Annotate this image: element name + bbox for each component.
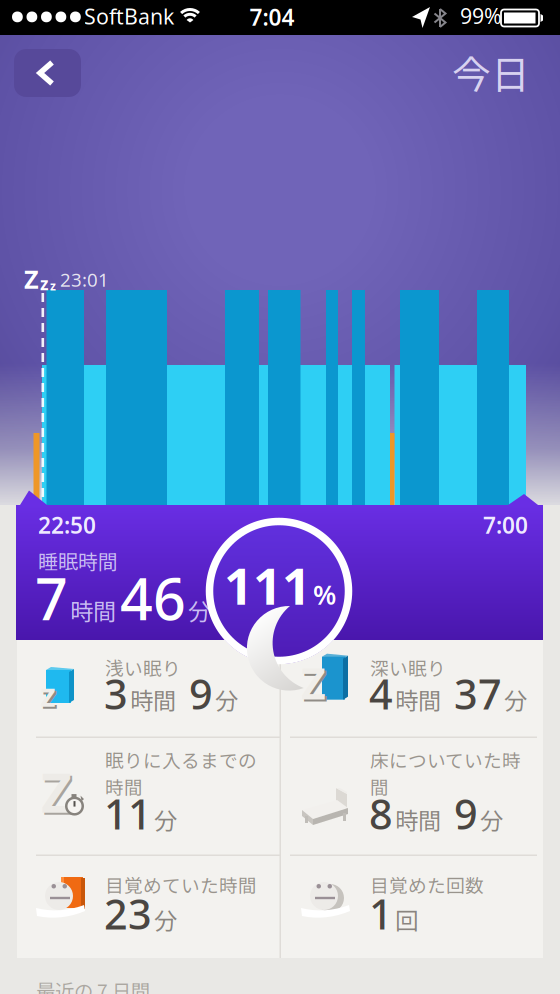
staticText: Z bbox=[41, 757, 72, 827]
staticText: Z bbox=[301, 655, 326, 711]
staticText: 眠りに入るまでの 時間 bbox=[105, 746, 257, 800]
staticText: 深い眠り bbox=[370, 654, 446, 681]
staticText: z bbox=[40, 673, 56, 715]
staticText: 目覚めた回数 bbox=[370, 871, 484, 898]
staticText: 9 bbox=[443, 786, 478, 841]
staticText: 時間 bbox=[70, 593, 116, 627]
staticText: 1 bbox=[369, 886, 393, 941]
staticText: 7 bbox=[35, 560, 68, 636]
staticText: 分 bbox=[504, 682, 527, 716]
staticText: 22:50 bbox=[38, 510, 96, 540]
staticText: 3 bbox=[104, 666, 128, 721]
button[interactable]: 今日 bbox=[452, 44, 530, 100]
staticText: Z bbox=[24, 262, 39, 296]
staticText: z bbox=[40, 272, 49, 295]
staticText: 46 bbox=[120, 560, 186, 636]
staticText: 分 bbox=[480, 802, 503, 836]
staticText: 7:04 bbox=[249, 2, 294, 32]
button[interactable] bbox=[14, 49, 81, 97]
staticText: 時間 bbox=[130, 682, 176, 716]
staticText: 回 bbox=[395, 902, 418, 936]
staticText: 111 bbox=[224, 551, 311, 619]
staticText: 23:01 bbox=[60, 267, 109, 292]
staticText: 時間 bbox=[395, 682, 441, 716]
staticText: SoftBank bbox=[84, 2, 174, 30]
staticText: 最近の 7 日間 bbox=[36, 976, 150, 994]
staticText: 23 bbox=[104, 886, 152, 941]
staticText: 分 bbox=[154, 802, 177, 836]
staticText: 時間 bbox=[395, 802, 441, 836]
staticText: 浅い眠り bbox=[105, 654, 181, 681]
staticText: z bbox=[42, 675, 58, 717]
staticText: Z bbox=[303, 657, 328, 713]
staticText: 11 bbox=[104, 786, 152, 841]
staticText: Z bbox=[43, 759, 74, 829]
staticText: z bbox=[50, 278, 56, 294]
staticText: 37 bbox=[443, 666, 502, 721]
staticText: 9 bbox=[178, 666, 213, 721]
staticText: 睡眠時間 bbox=[38, 546, 118, 575]
staticText: 目覚めていた時間 bbox=[105, 871, 257, 898]
staticText: 分 bbox=[188, 593, 211, 627]
staticText: 8 bbox=[369, 786, 393, 841]
staticText: 7:00 bbox=[483, 510, 528, 540]
staticText: 99% bbox=[460, 1, 502, 30]
staticText: 今日 bbox=[452, 44, 530, 100]
staticText: 分 bbox=[215, 682, 238, 716]
staticText: 床についていた時 間 bbox=[370, 746, 521, 800]
staticText: % bbox=[313, 577, 336, 612]
staticText: 4 bbox=[369, 666, 393, 721]
staticText: 分 bbox=[154, 902, 177, 936]
